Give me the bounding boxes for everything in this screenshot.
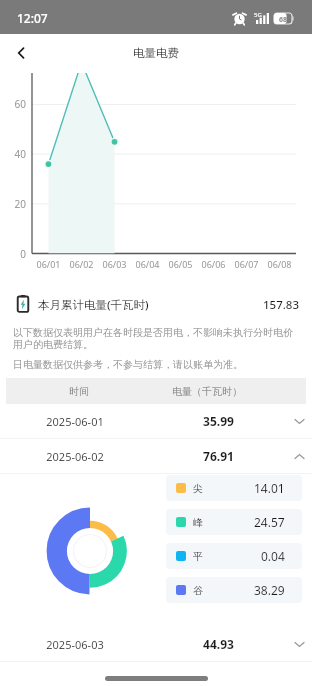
staticText: 38.29 [254, 582, 285, 598]
button[interactable]: 谷 [176, 577, 285, 603]
staticText: 谷 [193, 584, 203, 597]
button[interactable]: Back [6, 38, 36, 68]
staticText: 尖 [193, 482, 203, 495]
staticText: 12:07 [17, 10, 48, 26]
staticText: 平 [193, 550, 203, 563]
staticText: 35.99 [150, 413, 287, 429]
staticText: 峰 [193, 516, 203, 529]
staticText: 06/07 [230, 258, 263, 270]
staticText: 06/04 [131, 258, 164, 270]
button[interactable]: 峰 [176, 509, 285, 535]
staticText: 5G [254, 11, 262, 19]
staticText: 2025-06-03 [0, 637, 150, 652]
staticText: 电量（千瓦时） [152, 385, 262, 398]
staticText: 日电量数据仅供参考，不参与结算，请以账单为准。 [13, 358, 243, 371]
button[interactable]: 尖 [176, 475, 285, 501]
staticText: 06/05 [164, 258, 197, 270]
staticText: 0.04 [261, 548, 285, 564]
staticText: 76.91 [150, 448, 287, 464]
button[interactable]: 2025-06-01 [0, 404, 312, 438]
button[interactable]: 2025-06-03 [0, 627, 312, 661]
staticText: 2025-06-01 [0, 414, 150, 429]
staticText: 14.01 [254, 480, 285, 496]
staticText: 06/01 [32, 258, 65, 270]
staticText: 以下数据仅表明用户在各时段是否用电，不影响未执行分时电价用户的电费结算。 [13, 326, 301, 351]
button[interactable]: 2025-06-02 [0, 439, 312, 473]
staticText: 60 [0, 97, 26, 111]
staticText: 157.83 [250, 297, 299, 313]
staticText: 本月累计电量(千瓦时) [38, 297, 149, 313]
staticText: 06/08 [263, 258, 296, 270]
staticText: 20 [0, 197, 26, 211]
staticText: 44.93 [150, 636, 287, 652]
staticText: 时间 [6, 385, 152, 398]
staticText: 40 [0, 147, 26, 161]
staticText: 06/06 [197, 258, 230, 270]
staticText: 2025-06-02 [0, 449, 150, 464]
staticText: 06/03 [98, 258, 131, 270]
staticText: 06/02 [65, 258, 98, 270]
staticText: 电量电费 [133, 46, 179, 60]
button[interactable]: 平 [176, 543, 285, 569]
staticText: 0 [0, 247, 26, 261]
staticText: 24.57 [254, 514, 285, 530]
staticText: 68 [274, 15, 292, 25]
